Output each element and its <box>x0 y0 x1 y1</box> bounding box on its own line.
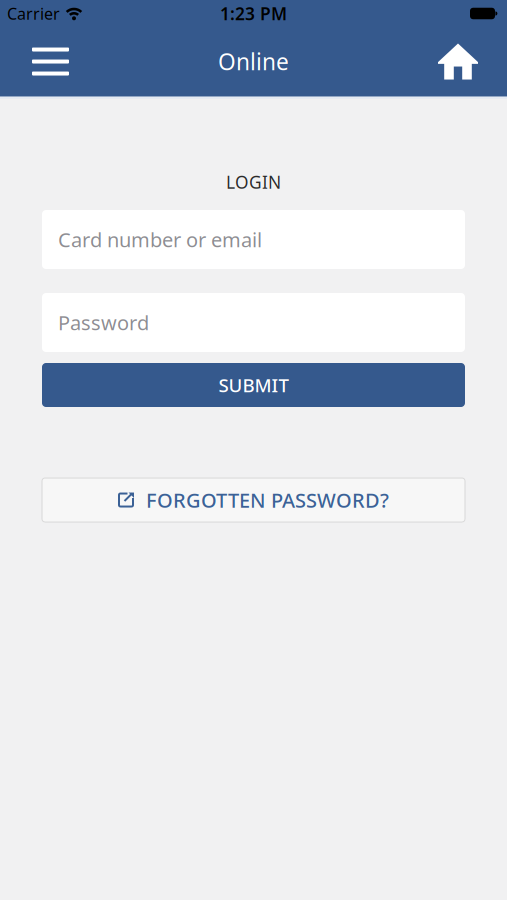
button[interactable]: SUBMIT <box>42 363 465 407</box>
button[interactable]: FORGOTTEN PASSWORD? <box>42 478 465 522</box>
staticText: SUBMIT <box>218 373 288 397</box>
staticText: Carrier <box>7 3 60 24</box>
button[interactable]: Password <box>42 293 465 352</box>
staticText: LOGIN <box>226 170 281 193</box>
staticText: Online <box>218 46 289 76</box>
staticText: Card number or email <box>58 226 262 253</box>
button[interactable]: Card number or email <box>42 210 465 269</box>
button[interactable]: Menu <box>0 27 89 95</box>
staticText: Password <box>58 309 149 336</box>
button[interactable]: Home <box>418 27 507 95</box>
staticText: 1:23 PM <box>220 2 287 25</box>
staticText: FORGOTTEN PASSWORD? <box>146 487 389 513</box>
